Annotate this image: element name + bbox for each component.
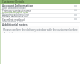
staticText: Additional notes xyxy=(2,23,28,27)
staticText: example@email.com xyxy=(2,11,29,15)
staticText: Customer Details xyxy=(2,0,25,4)
staticText: Visa ending 1234 xyxy=(2,20,23,24)
staticText: Account Information xyxy=(2,4,34,8)
staticText: Please confirm the delivery window with … xyxy=(3,28,79,33)
staticText: Last updated today xyxy=(2,6,26,10)
staticText: Billing reference no xyxy=(2,15,28,19)
staticText: Primary contact name xyxy=(2,9,31,13)
staticText: Payment method xyxy=(2,18,25,22)
staticText: Shipping address line xyxy=(2,13,30,17)
button[interactable]: Please confirm the delivery window with … xyxy=(2,26,79,33)
button[interactable]: App header xyxy=(0,0,80,4)
